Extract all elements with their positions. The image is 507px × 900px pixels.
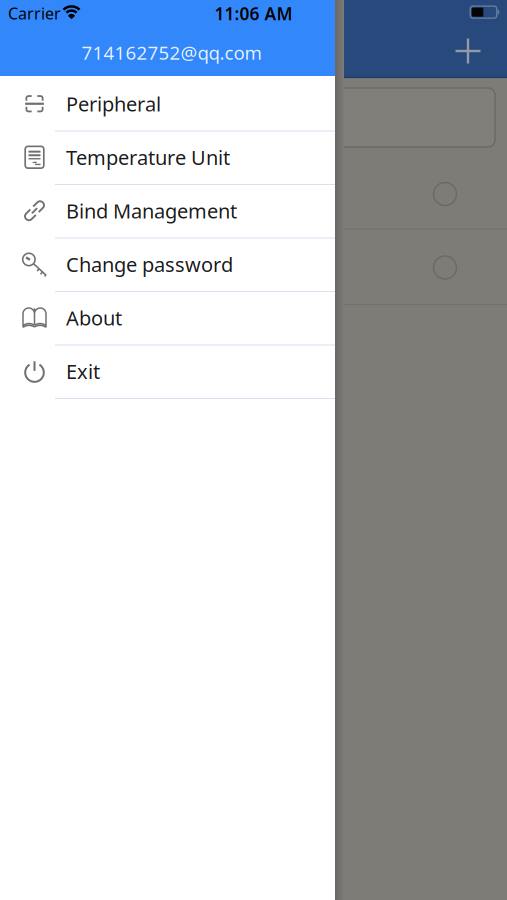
button[interactable]: About xyxy=(0,291,335,344)
button[interactable]: Change password xyxy=(0,237,335,291)
staticText: Change password xyxy=(66,251,233,278)
staticText: Temperature Unit xyxy=(66,144,230,171)
button[interactable]: Peripheral xyxy=(0,77,335,130)
staticText: Exit xyxy=(66,358,100,385)
button[interactable]: Exit xyxy=(0,344,335,398)
staticText: Peripheral xyxy=(66,90,161,117)
button[interactable]: Close menu xyxy=(335,0,507,900)
staticText: About xyxy=(66,304,122,331)
button[interactable]: Add xyxy=(446,29,490,73)
button[interactable]: Temperature Unit xyxy=(0,130,335,184)
staticText: Carrier xyxy=(8,3,61,24)
staticText: 714162752@qq.com xyxy=(81,40,261,65)
staticText: Bind Management xyxy=(66,197,237,224)
staticText: 11:06 AM xyxy=(214,2,292,25)
button[interactable]: Bind Management xyxy=(0,184,335,237)
